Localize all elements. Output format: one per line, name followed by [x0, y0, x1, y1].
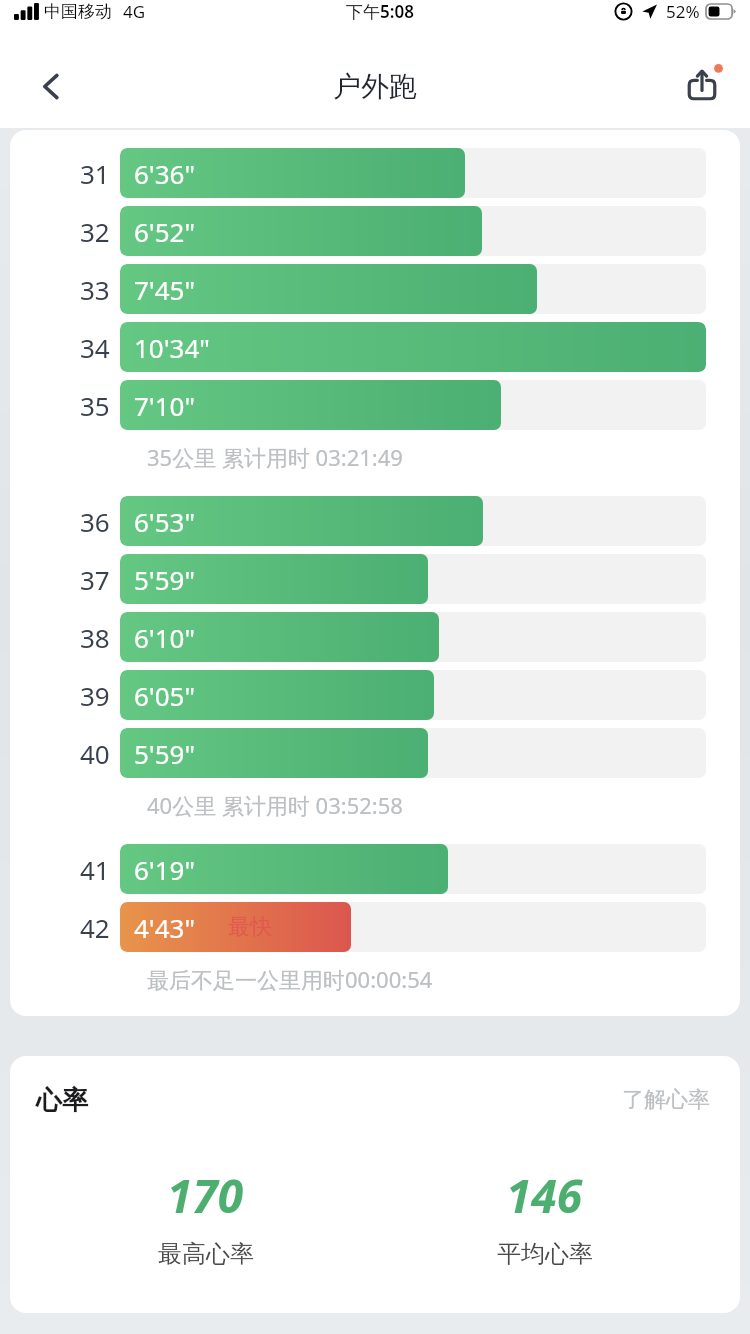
staticText: 下午5:08	[346, 0, 414, 23]
staticText: 心率	[36, 1084, 88, 1117]
button[interactable]: 32	[10, 202, 740, 260]
staticText: 36	[80, 504, 110, 539]
staticText: 146	[506, 1164, 583, 1227]
staticText: 5'59"	[134, 562, 196, 597]
button[interactable]: 了解心率	[618, 1082, 714, 1118]
staticText: 6'53"	[134, 504, 196, 539]
staticText: 户外跑	[333, 69, 417, 104]
staticText: 7'10"	[134, 388, 196, 423]
staticText: 32	[80, 214, 110, 249]
staticText: 31	[80, 156, 110, 191]
staticText: 最后不足一公里用时00:00:54	[147, 964, 433, 994]
button[interactable]: 37	[10, 550, 740, 608]
staticText: 170	[167, 1164, 244, 1227]
staticText: 4G	[123, 0, 146, 23]
staticText: 平均心率	[497, 1239, 593, 1269]
staticText: 52%	[666, 0, 700, 23]
button[interactable]: 36	[10, 492, 740, 550]
staticText: 6'05"	[134, 678, 196, 713]
button[interactable]: 38	[10, 608, 740, 666]
staticText: 6'10"	[134, 620, 196, 655]
staticText: 40	[80, 736, 110, 771]
staticText: 42	[80, 910, 110, 945]
staticText: 6'36"	[134, 156, 196, 191]
button[interactable]: 41	[10, 840, 740, 898]
staticText: 35公里 累计用时 03:21:49	[147, 442, 403, 472]
staticText: 6'19"	[134, 852, 196, 887]
button[interactable]: Back	[24, 59, 78, 113]
staticText: 最高心率	[158, 1239, 254, 1269]
staticText: 41	[80, 852, 110, 887]
staticText: 10'34"	[134, 330, 210, 365]
staticText: 40公里 累计用时 03:52:58	[147, 790, 403, 820]
staticText: 5'59"	[134, 736, 196, 771]
button[interactable]: 33	[10, 260, 740, 318]
button[interactable]: 42	[10, 898, 740, 956]
staticText: 6'52"	[134, 214, 196, 249]
staticText: 35	[80, 388, 110, 423]
staticText: 37	[80, 562, 110, 597]
staticText: 中国移动	[44, 1, 112, 22]
staticText: 了解心率	[622, 1086, 710, 1114]
button[interactable]: 35	[10, 376, 740, 434]
button[interactable]: 31	[10, 144, 740, 202]
staticText: 34	[80, 330, 110, 365]
button[interactable]: Share	[672, 56, 732, 116]
staticText: 38	[80, 620, 110, 655]
button[interactable]: 40	[10, 724, 740, 782]
button[interactable]: 34	[10, 318, 740, 376]
staticText: 4'43"	[134, 910, 196, 945]
staticText: 最快	[228, 913, 272, 941]
button[interactable]: 39	[10, 666, 740, 724]
staticText: 7'45"	[134, 272, 196, 307]
staticText: 33	[80, 272, 110, 307]
staticText: 39	[80, 678, 110, 713]
